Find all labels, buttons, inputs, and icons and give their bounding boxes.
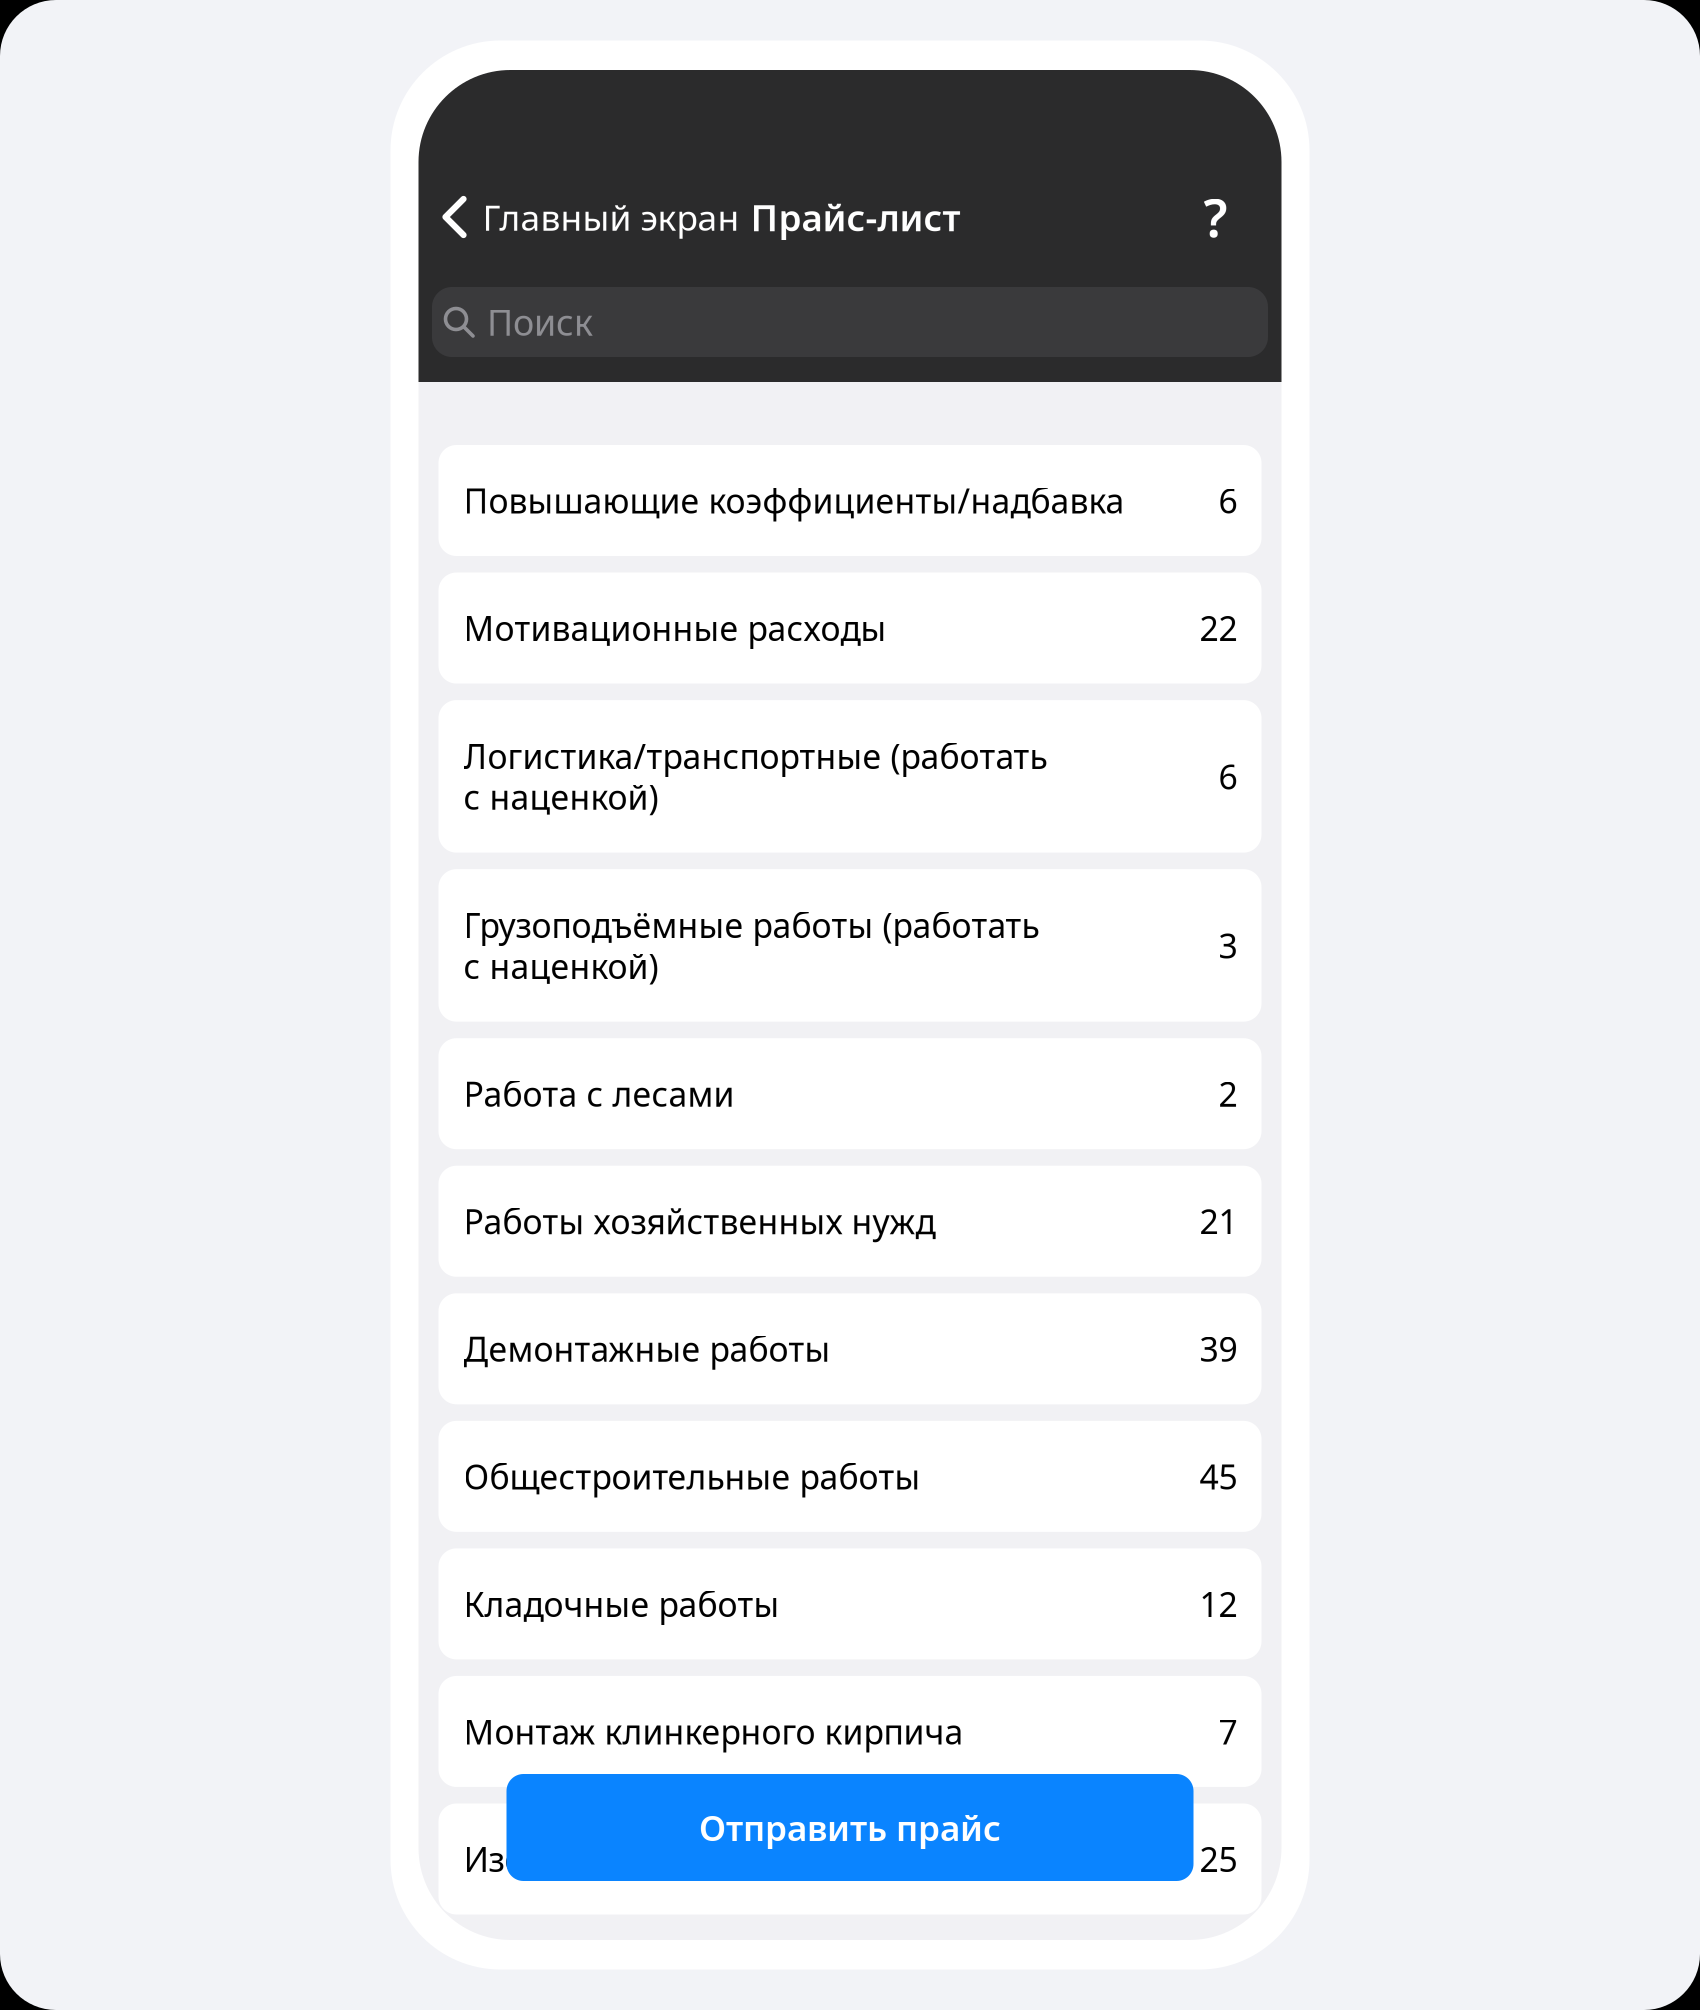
staticText: 6	[1218, 478, 1237, 523]
button[interactable]: Изоляционные работы	[438, 1803, 1261, 1914]
button[interactable]: Главный экран	[418, 187, 743, 247]
staticText: 25	[1199, 1836, 1237, 1882]
button[interactable]: Демонтажные работы	[438, 1293, 1261, 1404]
staticText: 7	[1218, 1708, 1237, 1754]
staticText: Повышающие коэффициенты/надбавка	[463, 478, 1124, 523]
staticText: Логистика/транспортные (работать	[463, 733, 1047, 779]
button[interactable]: Грузоподъёмные работы (работать	[438, 869, 1261, 1022]
button[interactable]: Повышающие коэффициенты/надбавка	[438, 445, 1261, 556]
staticText: с наценкой)	[463, 774, 658, 820]
staticText: Работы хозяйственных нужд	[463, 1198, 935, 1244]
staticText: 39	[1199, 1326, 1237, 1372]
button[interactable]: Кладочные работы	[438, 1548, 1261, 1659]
button[interactable]: Поиск	[432, 287, 1268, 357]
button[interactable]: Отправить прайс	[506, 1774, 1193, 1881]
staticText: Прайс-лист	[750, 192, 960, 242]
staticText: Работа с лесами	[463, 1071, 734, 1117]
staticText: ?	[1203, 182, 1227, 252]
staticText: Главный экран	[482, 193, 739, 241]
staticText: Мотивационные расходы	[463, 605, 886, 651]
staticText: Демонтажные работы	[463, 1326, 830, 1372]
button[interactable]: Работа с лесами	[438, 1038, 1261, 1149]
button[interactable]: Мотивационные расходы	[438, 572, 1261, 683]
staticText: 22	[1199, 605, 1237, 651]
staticText: Изоляционные работы	[463, 1836, 842, 1882]
staticText: Кладочные работы	[463, 1581, 779, 1627]
button[interactable]: Монтаж клинкерного кирпича	[438, 1676, 1261, 1787]
staticText: Поиск	[487, 298, 593, 346]
button[interactable]: Работы хозяйственных нужд	[438, 1166, 1261, 1277]
button[interactable]: Общестроительные работы	[438, 1421, 1261, 1532]
staticText: Отправить прайс	[699, 1804, 1001, 1851]
staticText: 12	[1199, 1581, 1237, 1627]
button[interactable]: Логистика/транспортные (работать	[438, 700, 1261, 853]
staticText: с наценкой)	[463, 943, 658, 989]
staticText: Общестроительные работы	[463, 1453, 920, 1499]
staticText: 21	[1199, 1198, 1237, 1244]
staticText: 2	[1218, 1071, 1237, 1117]
staticText: 45	[1199, 1453, 1237, 1499]
staticText: Грузоподъёмные работы (работать	[463, 902, 1039, 948]
button[interactable]: Справка	[1183, 174, 1247, 260]
staticText: 6	[1218, 753, 1237, 799]
staticText: Монтаж клинкерного кирпича	[463, 1708, 963, 1754]
staticText: 3	[1218, 922, 1237, 968]
